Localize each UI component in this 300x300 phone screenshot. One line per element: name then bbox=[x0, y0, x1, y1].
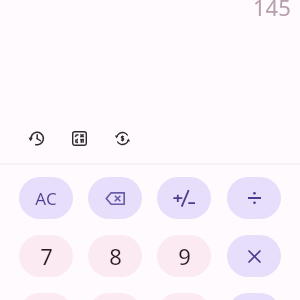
button[interactable]: 9 bbox=[157, 235, 211, 277]
staticText: AC bbox=[35, 187, 57, 210]
staticText: 9 bbox=[178, 241, 191, 271]
staticText: 145 bbox=[253, 0, 291, 22]
button[interactable]: 8 bbox=[88, 235, 142, 277]
button[interactable]: 6 bbox=[157, 293, 211, 300]
button[interactable]: 7 bbox=[19, 235, 73, 277]
button[interactable]: 4 bbox=[19, 293, 73, 300]
button[interactable]: Plus minus bbox=[157, 177, 211, 219]
staticText: 7 bbox=[40, 241, 53, 271]
button[interactable]: AC bbox=[19, 177, 73, 219]
button[interactable]: Subtract bbox=[227, 293, 281, 300]
button[interactable]: Unit converter bbox=[108, 124, 136, 152]
button[interactable]: Scientific calculator bbox=[65, 124, 93, 152]
staticText: 8 bbox=[109, 241, 122, 271]
button[interactable]: Backspace bbox=[88, 177, 142, 219]
button[interactable]: 5 bbox=[88, 293, 142, 300]
button[interactable]: Multiply bbox=[227, 235, 281, 277]
button[interactable]: History bbox=[22, 124, 50, 152]
button[interactable]: Divide bbox=[227, 177, 281, 219]
